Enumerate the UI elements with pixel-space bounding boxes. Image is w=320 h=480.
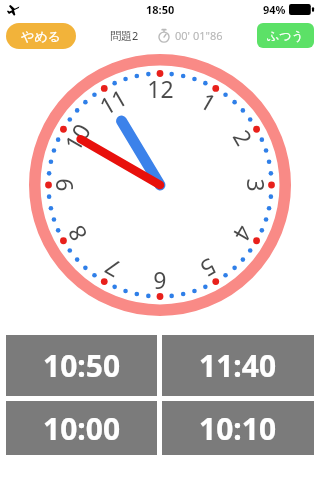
staticText: ふつう [267,28,304,43]
button[interactable]: 10:00 [6,401,157,455]
staticText: 94% [263,2,286,17]
staticText: 10:00 [43,408,121,449]
staticText: 10:50 [43,345,121,386]
button[interactable]: 10:50 [6,335,157,396]
button[interactable]: ふつう [257,23,314,48]
staticText: 問題2 [110,28,139,43]
button[interactable]: 11:40 [162,335,314,396]
staticText: 10:10 [199,408,277,449]
staticText: 6 [153,266,167,297]
button[interactable]: やめる [6,23,76,49]
other: Airplane mode [7,3,20,16]
staticText: 00' 01"86 [175,28,223,43]
button[interactable]: 10:10 [162,401,314,455]
staticText: やめる [21,28,61,44]
staticText: 18:50 [146,2,175,17]
staticText: 11 [93,81,132,121]
staticText: 9 [48,178,79,192]
staticText: 11:40 [199,345,277,386]
staticText: 8 [59,220,93,247]
staticText: 7 [98,252,126,285]
staticText: 1 [195,84,222,118]
staticText: 10 [56,117,97,156]
staticText: 3 [241,178,272,192]
staticText: 5 [195,252,222,285]
staticText: 12 [147,73,174,104]
staticText: 2 [227,123,260,151]
staticText: 4 [227,220,260,247]
